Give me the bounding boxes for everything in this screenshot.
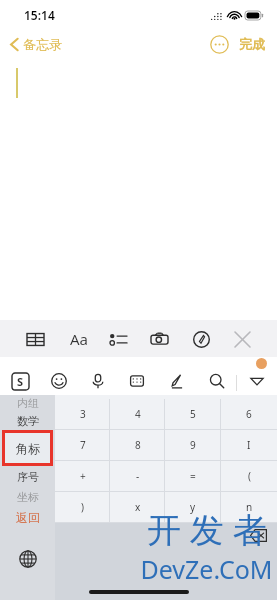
staticText: 序号 — [17, 470, 39, 484]
button[interactable]: Table — [20, 324, 50, 354]
button[interactable]: 8 — [110, 430, 165, 460]
button[interactable]: = — [165, 461, 221, 491]
button[interactable]: More options — [210, 35, 229, 54]
button[interactable]: - — [110, 461, 165, 491]
staticText: Aa — [70, 329, 89, 349]
button[interactable]: 序号 — [0, 466, 55, 487]
staticText: 完成 — [239, 36, 265, 52]
button[interactable]: 4 — [110, 399, 165, 429]
button[interactable]: Camera — [144, 324, 174, 354]
button[interactable]: 备忘录 — [6, 33, 66, 55]
staticText: 数学 — [17, 414, 39, 428]
button[interactable]: Sogou input — [10, 371, 30, 391]
staticText: - — [136, 469, 140, 483]
button[interactable]: 9 — [165, 430, 221, 460]
button[interactable]: 内组 — [0, 395, 55, 411]
staticText: ( — [248, 469, 251, 483]
button[interactable]: Search — [205, 369, 229, 393]
staticText: 4 — [135, 407, 141, 421]
button[interactable]: Handwriting — [165, 369, 189, 393]
button[interactable]: y — [165, 492, 221, 522]
staticText: 6 — [246, 407, 252, 421]
button[interactable]: Checklist — [103, 324, 133, 354]
staticText: = — [190, 469, 196, 483]
button[interactable]: Keyboard layout — [125, 369, 149, 393]
staticText: ) — [81, 500, 84, 514]
button[interactable]: 7 — [55, 430, 110, 460]
button[interactable]: 3 — [55, 399, 110, 429]
button[interactable]: 数学 — [0, 411, 55, 430]
staticText: 15:14 — [24, 7, 55, 23]
button[interactable]: Close keyboard — [227, 324, 257, 354]
button[interactable]: 5 — [165, 399, 221, 429]
button[interactable]: + — [55, 461, 110, 491]
staticText: 9 — [190, 438, 196, 452]
button[interactable]: 坐标 — [0, 487, 55, 506]
button[interactable]: Text format — [61, 324, 91, 354]
button[interactable]: Voice input — [86, 369, 110, 393]
staticText: 3 — [80, 407, 86, 421]
staticText: 开 发 者 — [147, 506, 267, 552]
button[interactable]: 返回 — [0, 506, 55, 528]
button[interactable]: I — [221, 430, 277, 460]
staticText: + — [80, 469, 86, 483]
staticText: 7 — [80, 438, 86, 452]
staticText: 内组 — [17, 396, 39, 410]
staticText: DevZe.CoM — [140, 552, 273, 586]
staticText: S — [17, 374, 24, 389]
button[interactable]: Delete — [245, 525, 271, 545]
button[interactable]: 角标 — [2, 430, 53, 466]
staticText: 角标 — [16, 441, 40, 456]
staticText: 5 — [190, 407, 196, 421]
staticText: y — [190, 500, 196, 514]
button[interactable]: x — [110, 492, 165, 522]
staticText: 备忘录 — [23, 36, 62, 52]
button[interactable]: ( — [221, 461, 277, 491]
staticText: 坐标 — [17, 490, 39, 504]
button[interactable]: Switch language — [0, 544, 55, 574]
button[interactable]: ) — [55, 492, 110, 522]
staticText: 返回 — [16, 510, 40, 525]
button[interactable]: 6 — [221, 399, 277, 429]
button[interactable]: 完成 — [237, 33, 267, 55]
staticText: x — [135, 500, 141, 514]
staticText: n — [246, 500, 253, 514]
button[interactable]: Emoji — [47, 369, 71, 393]
button[interactable]: Markup — [186, 324, 216, 354]
staticText: 8 — [135, 438, 141, 452]
button[interactable]: Collapse — [245, 369, 269, 393]
staticText: I — [247, 438, 251, 452]
button[interactable]: n — [221, 492, 277, 522]
